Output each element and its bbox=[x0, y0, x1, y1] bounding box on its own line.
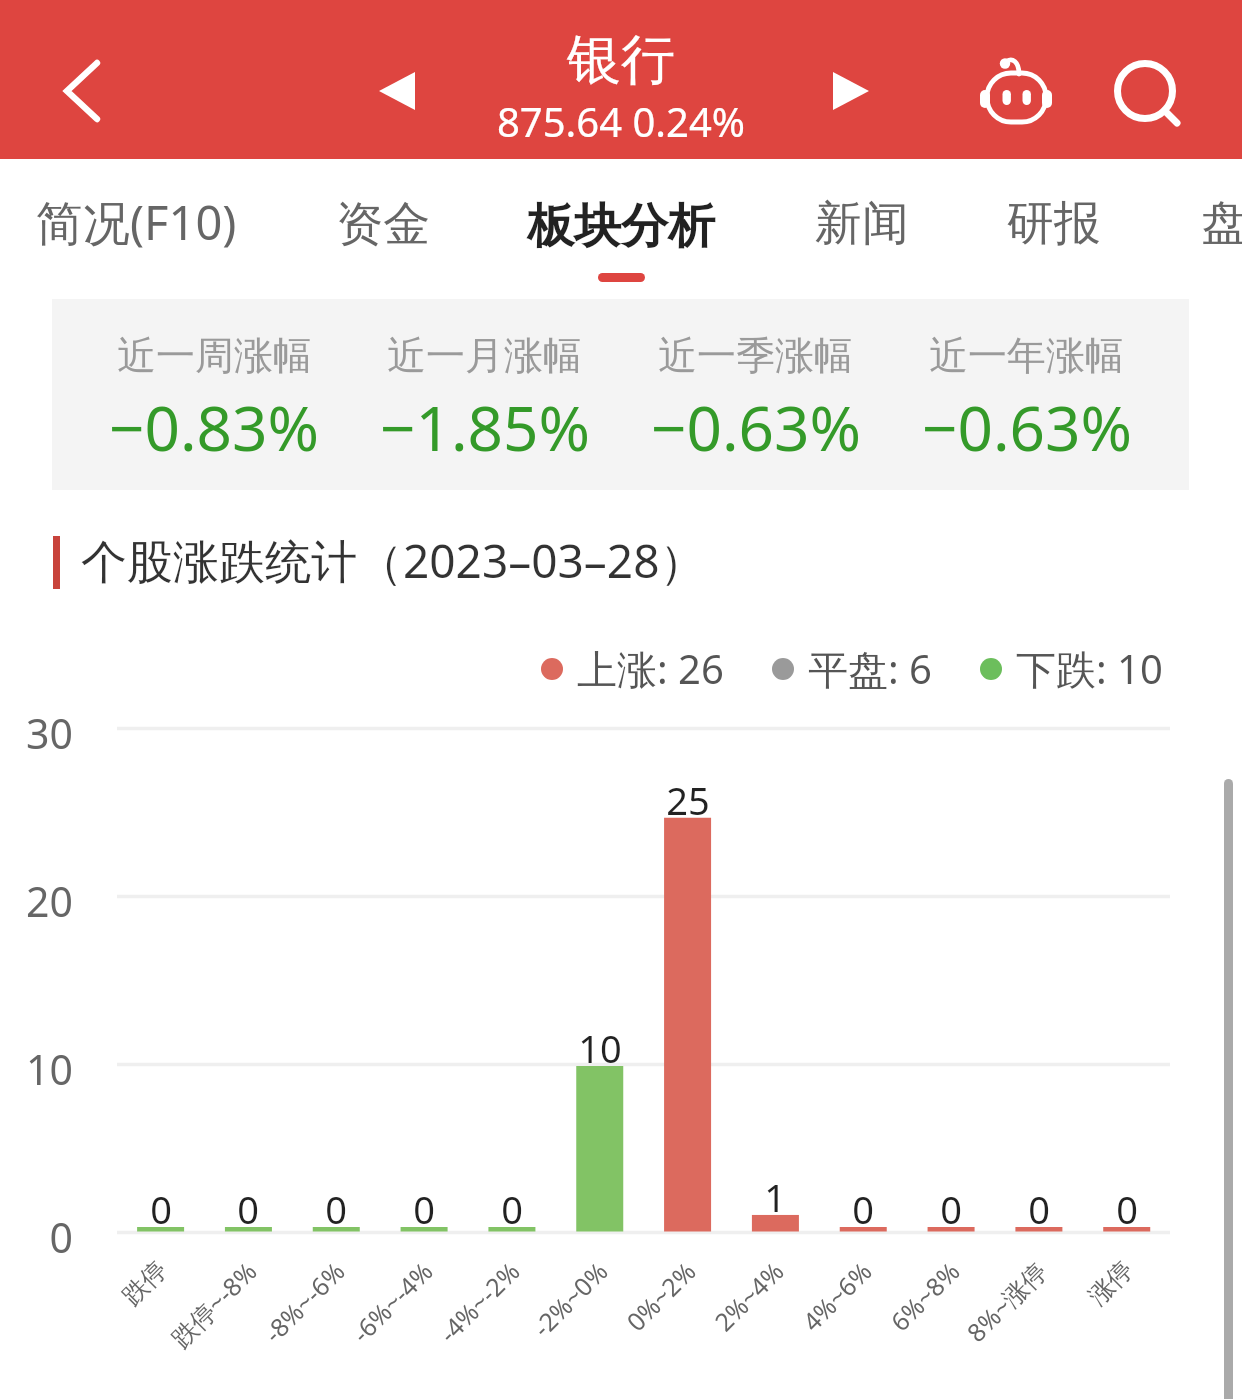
staticText: 跌停 bbox=[0, 1254, 173, 1399]
staticText: 个股涨跌统计（2023–03–28） bbox=[81, 529, 706, 592]
staticText: 1 bbox=[715, 1171, 835, 1223]
staticText: 0%~2% bbox=[466, 1254, 702, 1399]
button[interactable]: Back bbox=[28, 44, 108, 138]
staticText: 0 bbox=[276, 1183, 396, 1235]
button[interactable]: 盘 bbox=[1201, 194, 1242, 253]
staticText: 0 bbox=[0, 1209, 73, 1265]
staticText: 盘 bbox=[1201, 194, 1242, 253]
button[interactable]: Assistant bbox=[974, 50, 1064, 134]
button[interactable]: 研报 bbox=[1007, 194, 1101, 253]
button[interactable]: 近一周涨幅 bbox=[79, 299, 349, 469]
button[interactable]: 近一月涨幅 bbox=[349, 299, 620, 469]
staticText: 银行 bbox=[0, 26, 1242, 94]
staticText: 板块分析 bbox=[527, 197, 715, 256]
staticText: 资金 bbox=[336, 195, 430, 254]
button[interactable]: Search bbox=[1100, 46, 1192, 138]
staticText: 平盘: 6 bbox=[808, 641, 932, 696]
staticText: 4%~6% bbox=[642, 1254, 878, 1399]
staticText: -6%~-4% bbox=[203, 1254, 439, 1399]
staticText: −1.85% bbox=[380, 385, 590, 469]
staticText: 10 bbox=[0, 1041, 73, 1097]
staticText: −0.63% bbox=[651, 385, 861, 469]
staticText: 简况(F10) bbox=[36, 190, 237, 254]
staticText: 上涨: 26 bbox=[577, 641, 724, 696]
staticText: 30 bbox=[0, 705, 73, 761]
staticText: 0 bbox=[803, 1183, 923, 1235]
staticText: −0.83% bbox=[109, 385, 319, 469]
staticText: 0 bbox=[891, 1183, 1011, 1235]
button[interactable]: 资金 bbox=[336, 195, 430, 254]
staticText: 0 bbox=[979, 1183, 1099, 1235]
staticText: 新闻 bbox=[815, 194, 909, 253]
staticText: 6%~8% bbox=[730, 1254, 966, 1399]
staticText: 涨停 bbox=[905, 1254, 1139, 1399]
button[interactable]: 平盘: 6 bbox=[772, 641, 932, 696]
staticText: -4%~-2% bbox=[290, 1254, 526, 1399]
staticText: 0 bbox=[452, 1183, 572, 1235]
staticText: 20 bbox=[0, 873, 73, 929]
staticText: 0 bbox=[1067, 1183, 1187, 1235]
staticText: 8%~涨停 bbox=[817, 1254, 1053, 1399]
staticText: 0 bbox=[188, 1183, 308, 1235]
button[interactable]: 新闻 bbox=[815, 194, 909, 253]
staticText: 10 bbox=[540, 1022, 660, 1074]
button[interactable]: 上涨: 26 bbox=[541, 641, 724, 696]
staticText: 近一年涨幅 bbox=[929, 331, 1124, 380]
button[interactable]: Previous bbox=[358, 60, 436, 122]
staticText: 0 bbox=[101, 1183, 221, 1235]
staticText: −0.63% bbox=[922, 385, 1132, 469]
staticText: 近一月涨幅 bbox=[387, 331, 582, 380]
button[interactable]: 板块分析 bbox=[527, 197, 715, 256]
staticText: 2%~4% bbox=[554, 1254, 790, 1399]
staticText: 25 bbox=[628, 774, 748, 826]
button[interactable]: 下跌: 10 bbox=[980, 641, 1163, 696]
staticText: 0 bbox=[364, 1183, 484, 1235]
staticText: 875.64 0.24% bbox=[0, 94, 1242, 148]
staticText: 近一季涨幅 bbox=[658, 331, 853, 380]
button[interactable]: 近一年涨幅 bbox=[891, 299, 1162, 469]
staticText: 下跌: 10 bbox=[1016, 641, 1163, 696]
staticText: 近一周涨幅 bbox=[117, 331, 312, 380]
staticText: 研报 bbox=[1007, 194, 1101, 253]
staticText: -8%~-6% bbox=[115, 1254, 351, 1399]
button[interactable]: 近一季涨幅 bbox=[620, 299, 891, 469]
button[interactable]: 简况(F10) bbox=[36, 190, 237, 254]
button[interactable]: Next bbox=[808, 60, 886, 122]
staticText: 跌停~-8% bbox=[27, 1254, 263, 1399]
staticText: -2%~0% bbox=[378, 1254, 614, 1399]
